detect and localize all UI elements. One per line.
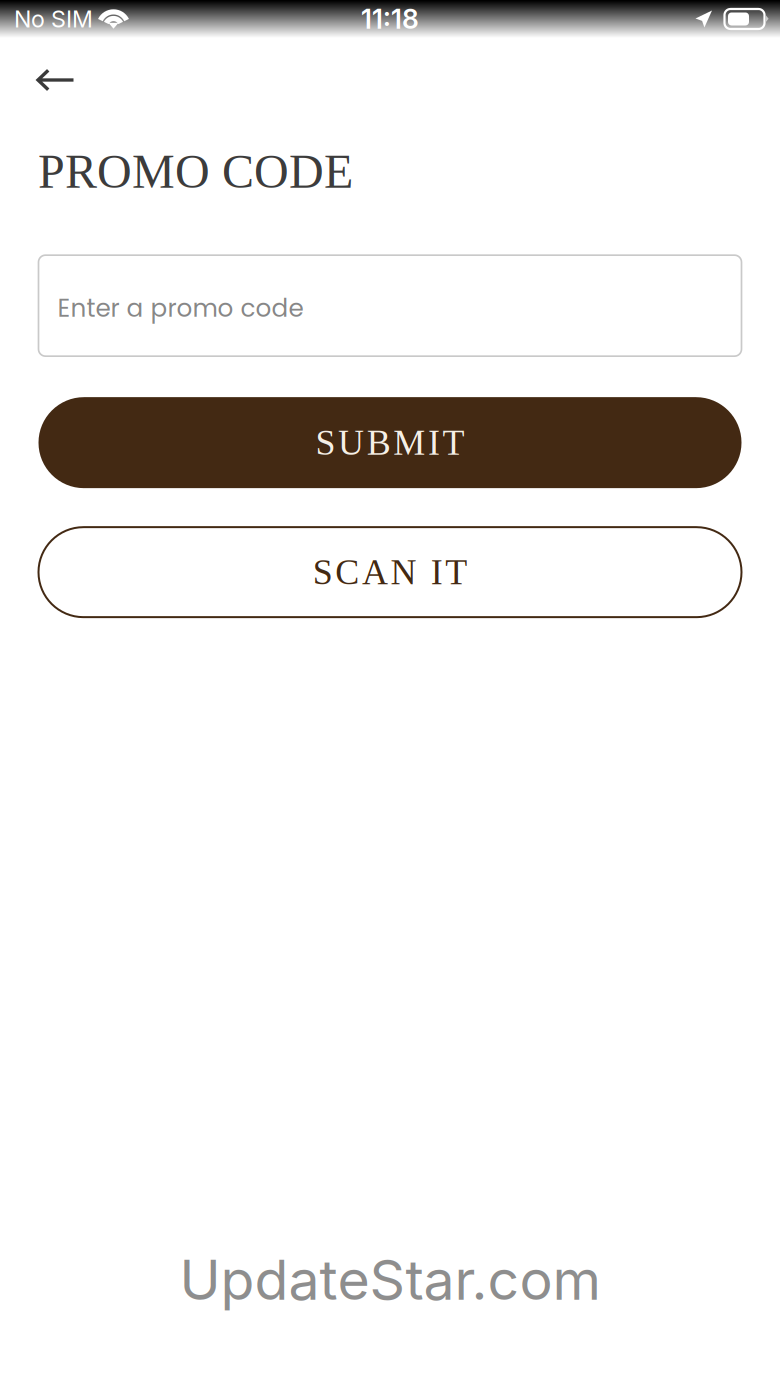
staticText: Enter a promo code [57, 291, 303, 325]
staticText: SUBMIT [315, 423, 464, 463]
button[interactable]: Back [36, 54, 110, 106]
staticText: No SIM [14, 5, 93, 33]
staticText: PROMO CODE [38, 145, 353, 198]
staticText: 11:18 [361, 3, 419, 35]
staticText: UpdateStar.com [179, 1246, 600, 1313]
staticText: SCAN IT [313, 552, 467, 592]
button[interactable]: SUBMIT [38, 397, 741, 488]
button[interactable]: SCAN IT [38, 527, 741, 617]
